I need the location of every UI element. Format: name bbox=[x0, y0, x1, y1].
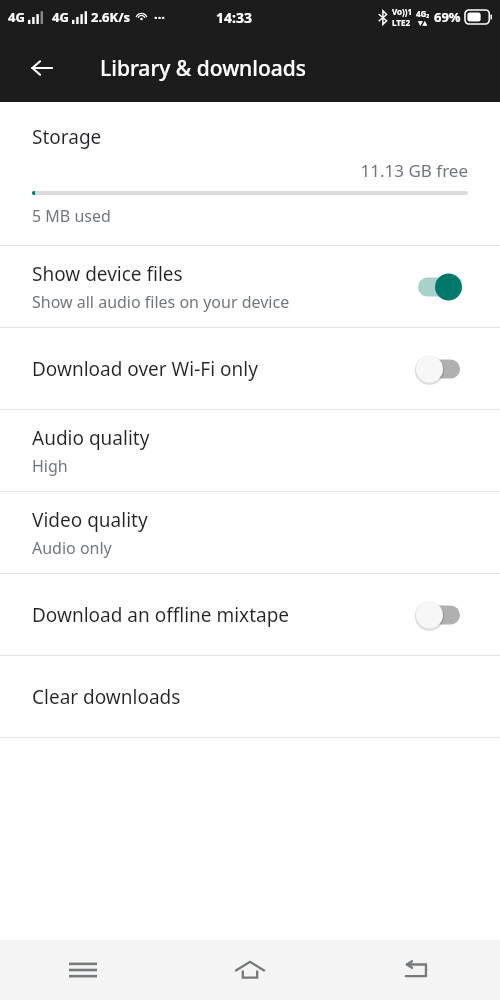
staticText: Clear downloads bbox=[32, 684, 181, 710]
staticText: 4G₂ bbox=[416, 8, 430, 19]
staticText: Video quality bbox=[32, 507, 148, 533]
staticText: LTE2 bbox=[392, 17, 410, 28]
staticText: Show all audio files on your device bbox=[32, 291, 290, 313]
staticText: 4G bbox=[8, 8, 25, 26]
staticText: High bbox=[32, 455, 68, 477]
button[interactable]: Home bbox=[166, 940, 333, 1000]
button[interactable]: Back bbox=[20, 46, 64, 90]
button[interactable]: Download over Wi-Fi only bbox=[0, 328, 500, 409]
button[interactable]: Recent apps bbox=[0, 940, 166, 1000]
staticText: Audio quality bbox=[32, 425, 150, 451]
staticText: 69% bbox=[434, 8, 461, 26]
staticText: Download an offline mixtape bbox=[32, 602, 290, 628]
staticText: Vo))1 bbox=[392, 6, 413, 17]
staticText: Library & downloads bbox=[100, 54, 307, 83]
staticText: Download over Wi-Fi only bbox=[32, 356, 258, 382]
button[interactable]: Storage bbox=[0, 102, 500, 245]
button[interactable]: Download an offline mixtape bbox=[0, 574, 500, 655]
button[interactable]: Audio quality bbox=[0, 410, 500, 491]
button[interactable]: Download over Wi-Fi only bbox=[410, 349, 468, 389]
button[interactable]: Video quality bbox=[0, 492, 500, 573]
button[interactable]: Download an offline mixtape bbox=[410, 595, 468, 635]
button[interactable]: Show device files bbox=[410, 267, 468, 307]
button[interactable]: Clear downloads bbox=[0, 656, 500, 737]
staticText: Audio only bbox=[32, 537, 112, 559]
staticText: ··· bbox=[154, 8, 165, 26]
button[interactable]: Back bbox=[333, 940, 500, 1000]
staticText: ▼▲ bbox=[418, 19, 428, 26]
staticText: Show device files bbox=[32, 261, 183, 287]
staticText: 4G bbox=[52, 8, 69, 26]
button[interactable]: Show device files bbox=[0, 246, 500, 327]
staticText: Storage bbox=[32, 124, 102, 150]
staticText: 5 MB used bbox=[32, 205, 111, 227]
staticText: 14:33 bbox=[216, 8, 252, 27]
staticText: 11.13 GB free bbox=[32, 159, 468, 182]
staticText: 2.6K/s bbox=[91, 8, 131, 26]
